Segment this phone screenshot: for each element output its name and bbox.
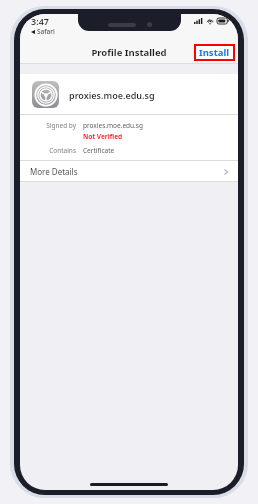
button[interactable]: Install [194, 44, 235, 61]
staticText: Certificate [83, 146, 115, 155]
other: Settings profile icon [32, 81, 59, 108]
staticText: 3:47 [31, 15, 49, 27]
staticText: Safari [37, 27, 55, 36]
staticText: Not Verified [83, 132, 123, 141]
staticText: Contains [20, 146, 76, 155]
staticText: Install [199, 46, 230, 59]
staticText: proxies.moe.edu.sg [83, 121, 143, 130]
button[interactable]: Settings profile icon [20, 74, 238, 115]
staticText: proxies.moe.edu.sg [69, 89, 155, 101]
staticText: Signed by [20, 121, 76, 130]
button[interactable]: More Details [20, 161, 238, 182]
staticText: Profile Installed [91, 46, 167, 59]
staticText: More Details [30, 166, 78, 177]
